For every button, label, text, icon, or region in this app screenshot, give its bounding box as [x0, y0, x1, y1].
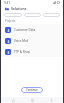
button[interactable]: Status — [43, 13, 60, 17]
button[interactable]: Documents — [25, 97, 39, 103]
staticText: Status — [48, 14, 56, 17]
button[interactable]: Sort — [4, 13, 22, 17]
button[interactable]: Customer Data — [1, 24, 63, 35]
staticText: Solutions — [11, 6, 27, 11]
button[interactable]: Continue — [21, 87, 43, 93]
button[interactable]: Home — [6, 97, 20, 103]
staticText: Sort — [11, 14, 16, 17]
staticText: Continue — [26, 88, 38, 92]
button[interactable]: Profile — [44, 97, 58, 103]
staticText: FTP & Shop — [14, 50, 59, 54]
staticText: Projects — [5, 19, 16, 23]
button[interactable]: Voice Mail — [1, 35, 63, 46]
staticText: Voice Mail — [14, 39, 59, 43]
button[interactable]: FTP & Shop — [1, 46, 63, 57]
button[interactable]: Filter — [24, 13, 41, 17]
staticText: 9:41 — [4, 1, 10, 5]
staticText: Customer Data — [14, 28, 59, 32]
staticText: Filter — [30, 14, 36, 17]
